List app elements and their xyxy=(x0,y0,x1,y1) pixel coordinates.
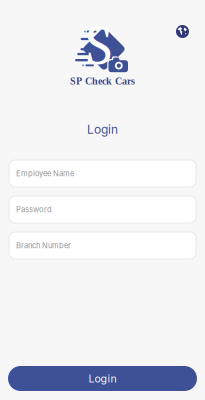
button[interactable]: Login xyxy=(8,366,197,391)
staticText: Branch Number xyxy=(16,241,71,250)
staticText: Password xyxy=(16,205,52,214)
staticText: Employee Name xyxy=(16,169,74,178)
staticText: SP Check Cars xyxy=(70,75,135,87)
button[interactable]: Language xyxy=(170,19,195,44)
staticText: Login xyxy=(87,122,118,136)
staticText: S xyxy=(84,9,113,79)
staticText: Login xyxy=(88,372,116,385)
